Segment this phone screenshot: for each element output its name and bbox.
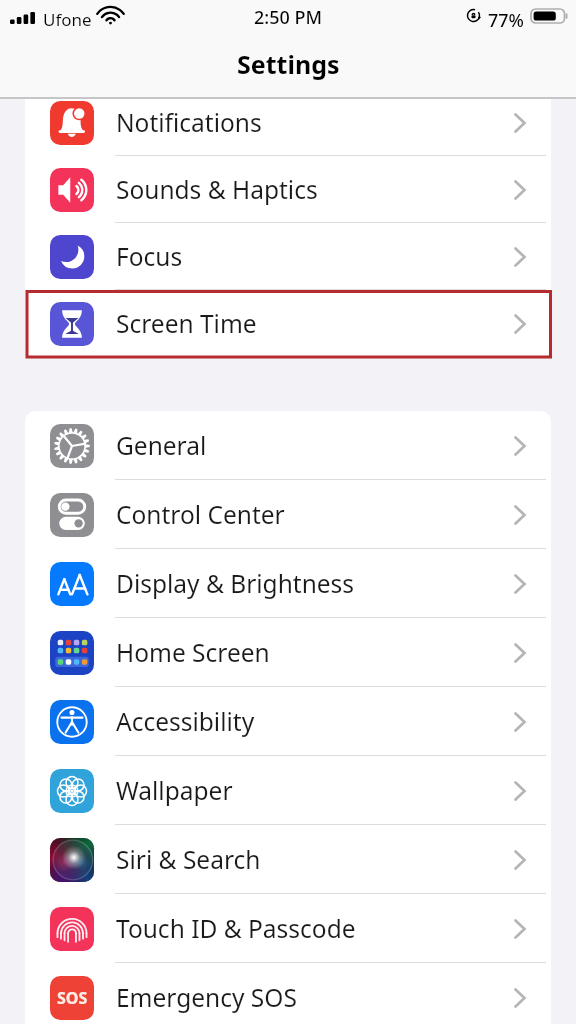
staticText: Control Center — [116, 498, 285, 531]
staticText: Wallpaper — [116, 774, 233, 807]
button[interactable]: Sounds & Haptics — [25, 156, 551, 223]
button[interactable]: Siri & Search — [25, 825, 551, 894]
staticText: Touch ID & Passcode — [116, 912, 356, 945]
button[interactable]: Notifications — [25, 89, 551, 156]
staticText: Siri & Search — [116, 843, 261, 876]
staticText: Display & Brightness — [116, 567, 355, 600]
button[interactable]: SOS — [25, 963, 551, 1024]
button[interactable]: Touch ID & Passcode — [25, 894, 551, 963]
button[interactable]: Focus — [25, 223, 551, 290]
button[interactable]: Display & Brightness — [25, 549, 551, 618]
staticText: Accessibility — [116, 705, 255, 738]
button[interactable]: General — [25, 411, 551, 480]
button[interactable]: Home Screen — [25, 618, 551, 687]
button[interactable]: Wallpaper — [25, 756, 551, 825]
staticText: SOS — [57, 987, 88, 1009]
staticText: Focus — [116, 240, 183, 273]
staticText: Settings — [237, 47, 340, 81]
staticText: 77% — [488, 8, 524, 33]
staticText: 2:50 PM — [254, 5, 322, 30]
staticText: Home Screen — [116, 636, 270, 669]
button[interactable]: Accessibility — [25, 687, 551, 756]
button[interactable]: Screen Time — [25, 290, 551, 357]
staticText: Screen Time — [116, 307, 257, 340]
staticText: General — [116, 429, 207, 462]
staticText: Sounds & Haptics — [116, 173, 318, 206]
staticText: Emergency SOS — [116, 981, 297, 1014]
button[interactable]: Control Center — [25, 480, 551, 549]
staticText: Notifications — [116, 106, 262, 139]
staticText: Ufone — [43, 8, 92, 31]
